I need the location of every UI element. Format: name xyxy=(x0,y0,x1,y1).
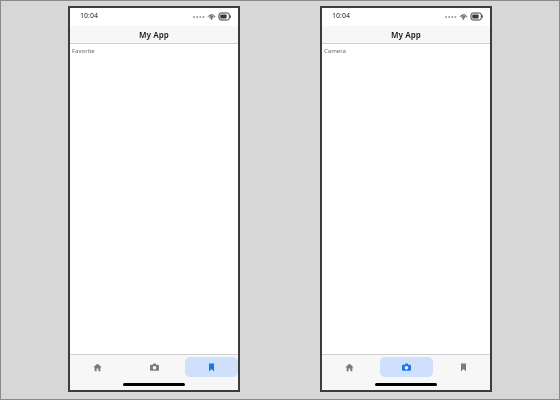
button[interactable]: Bookmark xyxy=(437,357,490,377)
staticText: My App xyxy=(139,29,169,40)
staticText: My App xyxy=(391,29,421,40)
staticText: Camera xyxy=(324,47,346,55)
button[interactable]: Bookmark xyxy=(185,357,238,377)
button[interactable]: Camera xyxy=(380,357,433,377)
button[interactable]: Camera xyxy=(128,357,181,377)
button[interactable]: Home xyxy=(322,357,376,377)
button[interactable]: Home xyxy=(70,357,124,377)
staticText: 10:04 xyxy=(332,11,350,21)
staticText: 10:04 xyxy=(80,11,98,21)
staticText: Favorite xyxy=(72,47,95,55)
